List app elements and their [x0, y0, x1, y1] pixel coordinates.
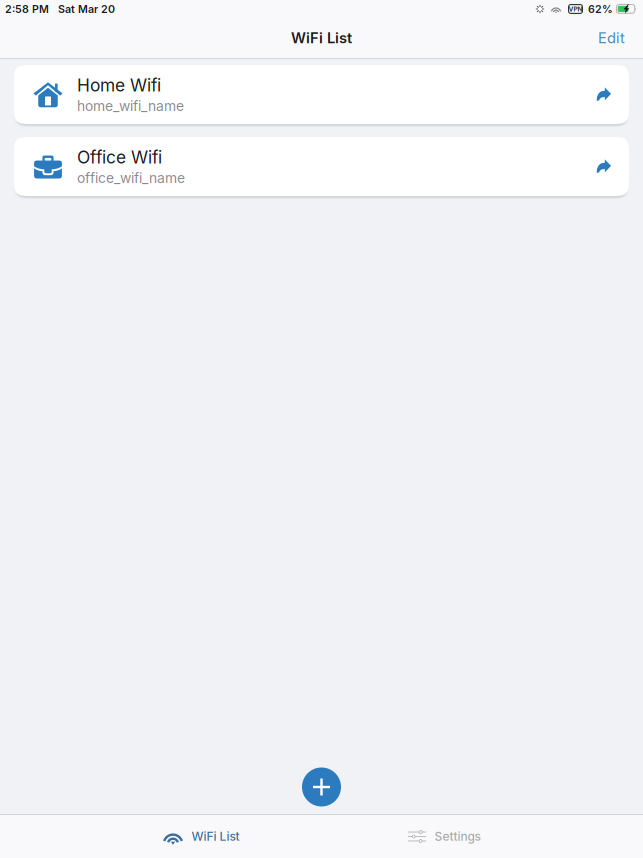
staticText: 62%: [588, 2, 613, 15]
button[interactable]: Edit: [580, 21, 643, 55]
staticText: office_wifi_name: [77, 170, 185, 186]
staticText: VPN: [568, 5, 582, 13]
button[interactable]: Settings: [399, 815, 488, 858]
button[interactable]: Home Wifi: [14, 65, 629, 124]
staticText: Sat Mar 20: [58, 2, 115, 15]
button[interactable]: Office Wifi: [14, 137, 629, 196]
staticText: WiFi List: [291, 29, 352, 47]
button[interactable]: WiFi List: [154, 815, 247, 858]
staticText: home_wifi_name: [77, 98, 184, 114]
button[interactable]: Add Wi-Fi network: [295, 761, 347, 813]
staticText: 2:58 PM: [5, 2, 49, 15]
staticText: WiFi List: [191, 829, 239, 844]
staticText: Edit: [598, 29, 625, 47]
staticText: Settings: [434, 829, 480, 844]
staticText: Office Wifi: [77, 147, 162, 168]
staticText: Home Wifi: [77, 75, 161, 96]
